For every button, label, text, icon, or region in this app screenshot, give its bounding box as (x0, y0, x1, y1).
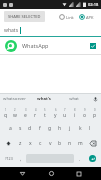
staticText: 0 (94, 108, 96, 112)
button[interactable]: v (45, 136, 55, 151)
button[interactable]: 0 (90, 105, 100, 121)
button[interactable]: f (35, 121, 45, 136)
staticText: n (68, 140, 72, 147)
button[interactable]: x (25, 136, 35, 151)
button[interactable]: Voice input (89, 94, 101, 104)
staticText: 9 (84, 108, 86, 112)
staticText: w (13, 112, 17, 119)
button[interactable]: m (75, 136, 85, 151)
button[interactable]: . (75, 151, 84, 166)
button[interactable]: WhatsApp (0, 37, 101, 54)
button[interactable]: c (35, 136, 45, 151)
button[interactable]: 3 (20, 105, 30, 121)
staticText: x (29, 140, 32, 147)
button[interactable]: what (59, 94, 89, 104)
staticText: l (89, 125, 91, 132)
staticText: what's (37, 96, 51, 102)
staticText: e (24, 112, 27, 119)
button[interactable]: whats (0, 24, 101, 36)
staticText: 6 (55, 108, 57, 112)
button[interactable]: Link (58, 12, 75, 22)
staticText: 1 (5, 108, 7, 112)
staticText: s (19, 125, 22, 132)
staticText: m (78, 140, 83, 147)
staticText: h (58, 125, 62, 132)
button[interactable]: s (15, 121, 25, 136)
button[interactable]: what's (29, 94, 59, 104)
staticText: 4 (35, 108, 37, 112)
staticText: whatsoever (3, 96, 26, 102)
staticText: c (39, 140, 42, 147)
button[interactable]: Home (44, 167, 58, 180)
button[interactable]: a (5, 121, 15, 136)
staticText: v (49, 140, 52, 147)
staticText: whats (4, 27, 19, 34)
button[interactable]: b (55, 136, 65, 151)
button[interactable]: SHARE SELECTED (4, 11, 45, 22)
staticText: Link (66, 15, 74, 20)
staticText: SHARE SELECTED (8, 14, 41, 19)
staticText: b (58, 140, 62, 147)
button[interactable]: l (85, 121, 95, 136)
staticText: u (63, 112, 67, 119)
staticText: APK (86, 15, 94, 20)
staticText: i (74, 112, 76, 119)
staticText: r (34, 112, 37, 119)
staticText: t (44, 112, 46, 119)
button[interactable]: 2 (10, 105, 20, 121)
button[interactable]: g (45, 121, 55, 136)
staticText: , (20, 156, 22, 162)
button[interactable]: 5 (40, 105, 50, 121)
button[interactable]: , (16, 151, 25, 166)
button[interactable]: 8 (70, 105, 80, 121)
staticText: WhatsApp (22, 42, 49, 49)
staticText: p (93, 112, 97, 119)
button[interactable]: APK (78, 12, 95, 22)
button[interactable]: Back (15, 167, 29, 180)
staticText: j (69, 125, 71, 132)
button[interactable]: z (15, 136, 25, 151)
button[interactable]: n (65, 136, 75, 151)
staticText: ?123 (5, 156, 13, 161)
button[interactable]: k (75, 121, 85, 136)
button[interactable]: ?123 (1, 151, 16, 166)
staticText: 8 (74, 108, 76, 112)
button[interactable]: Enter (84, 151, 100, 166)
staticText: 2 (14, 108, 16, 112)
staticText: 5 (44, 108, 46, 112)
staticText: 7 (64, 108, 66, 112)
button[interactable]: j (65, 121, 75, 136)
staticText: q (4, 112, 8, 119)
staticText: what (69, 96, 79, 102)
staticText: z (19, 140, 22, 147)
button[interactable]: 4 (30, 105, 40, 121)
staticText: o (83, 112, 87, 119)
staticText: 3 (25, 108, 27, 112)
staticText: a (9, 125, 12, 132)
staticText: g (48, 125, 52, 132)
button[interactable]: 9 (80, 105, 90, 121)
staticText: d (28, 125, 32, 132)
staticText: k (79, 125, 82, 132)
button[interactable]: h (55, 121, 65, 136)
button[interactable]: Shift (1, 136, 15, 151)
button[interactable]: Selected (90, 43, 96, 49)
staticText: y (54, 112, 57, 119)
staticText: 02:18 (88, 2, 99, 7)
button[interactable]: Recents (72, 167, 86, 180)
button[interactable]: 6 (50, 105, 60, 121)
button[interactable]: whatsoever (0, 94, 29, 104)
button[interactable]: 7 (60, 105, 70, 121)
staticText: f (39, 125, 41, 132)
staticText: . (79, 156, 81, 162)
button[interactable]: 1 (1, 105, 10, 121)
button[interactable]: d (25, 121, 35, 136)
button[interactable]: Backspace (85, 136, 100, 151)
